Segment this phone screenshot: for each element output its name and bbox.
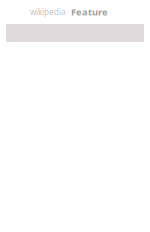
staticText: wikipedia [30,7,65,17]
staticText: Feature [71,6,108,18]
